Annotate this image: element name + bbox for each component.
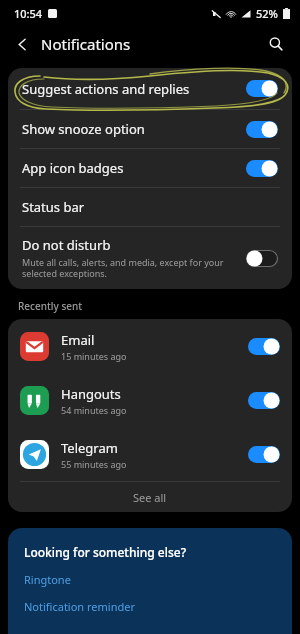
button[interactable]: See all: [8, 482, 292, 512]
button[interactable]: Back: [6, 28, 38, 60]
button[interactable]: Search: [260, 28, 292, 60]
staticText: Status bar: [22, 198, 85, 216]
staticText: Looking for something else?: [24, 544, 186, 560]
button[interactable]: Email: [8, 319, 292, 373]
staticText: Mute all calls, alerts, and media, excep…: [22, 256, 234, 280]
staticText: Recently sent: [18, 299, 83, 313]
button[interactable]: Hangouts: [8, 373, 292, 427]
button[interactable]: Show snooze option: [8, 110, 292, 148]
staticText: Notifications: [41, 34, 131, 54]
staticText: Ringtone: [24, 572, 71, 587]
button[interactable]: Ringtone: [24, 572, 71, 587]
staticText: 52%: [256, 6, 278, 21]
button[interactable]: Notification reminder: [24, 599, 135, 614]
staticText: Show snooze option: [22, 120, 246, 138]
staticText: Telegram: [61, 439, 118, 457]
staticText: 54 minutes ago: [61, 404, 127, 416]
staticText: Hangouts: [61, 385, 121, 403]
button[interactable]: Suggest actions and replies: [8, 68, 292, 109]
staticText: App icon badges: [22, 159, 246, 177]
staticText: Do not disturb: [22, 236, 111, 254]
staticText: Email: [61, 331, 95, 349]
staticText: Notification reminder: [24, 599, 135, 614]
staticText: 10:54: [14, 6, 43, 21]
button[interactable]: Status bar: [8, 188, 292, 226]
staticText: 55 minutes ago: [61, 458, 127, 470]
button[interactable]: App icon badges: [8, 149, 292, 187]
staticText: 15 minutes ago: [61, 350, 127, 362]
staticText: Suggest actions and replies: [22, 80, 246, 98]
button[interactable]: Telegram: [8, 427, 292, 481]
button[interactable]: Do not disturb: [8, 227, 292, 289]
staticText: See all: [133, 490, 167, 505]
